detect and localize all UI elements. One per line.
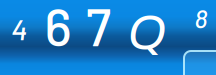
staticText: Q [128, 7, 166, 59]
staticText: 6 [44, 0, 71, 57]
staticText: 7 [86, 0, 111, 57]
staticText: 8 [194, 3, 207, 33]
staticText: 4 [11, 11, 27, 46]
